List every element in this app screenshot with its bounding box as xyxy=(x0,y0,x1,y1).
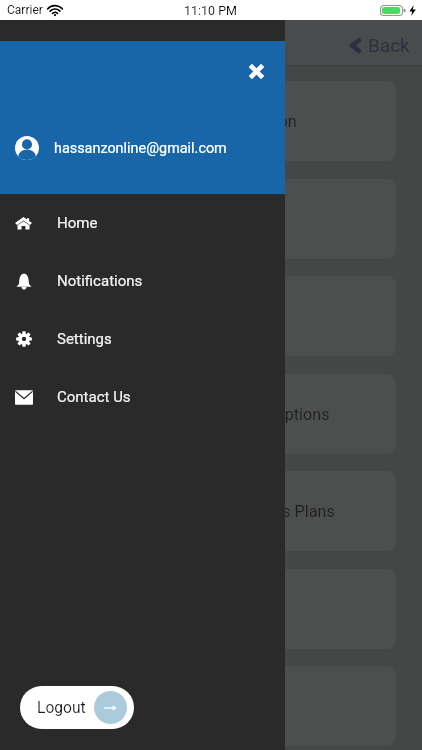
button[interactable] xyxy=(26,666,396,746)
button[interactable]: Home xyxy=(0,194,285,252)
staticText: Carrier xyxy=(7,3,43,17)
button[interactable]: Logout xyxy=(20,686,134,729)
button[interactable]: Back xyxy=(340,30,422,56)
staticText: hassanzonline@gmail.com xyxy=(54,140,227,157)
button[interactable]: Manage Subscription xyxy=(26,81,396,161)
staticText: Contact Us xyxy=(57,388,131,406)
staticText: Settings xyxy=(57,330,112,348)
staticText: Payment Options xyxy=(206,405,330,424)
staticText: Manage Subscription xyxy=(144,112,297,131)
staticText: Notifications xyxy=(57,272,143,290)
staticText: Home xyxy=(57,214,98,232)
button[interactable] xyxy=(26,276,396,356)
button[interactable]: Contact Us xyxy=(0,368,285,426)
button[interactable]: Settings xyxy=(0,310,285,368)
button[interactable]: Notifications xyxy=(0,252,285,310)
button[interactable]: Payment Options xyxy=(26,374,396,454)
staticText: Back xyxy=(368,34,410,56)
button[interactable] xyxy=(26,569,396,649)
staticText: Business Plans xyxy=(225,502,335,521)
staticText: Logout xyxy=(37,699,86,717)
button[interactable]: Close drawer xyxy=(242,57,270,85)
staticText: 11:10 PM xyxy=(184,3,238,18)
button[interactable] xyxy=(26,179,396,259)
button[interactable]: Business Plans xyxy=(26,471,396,551)
